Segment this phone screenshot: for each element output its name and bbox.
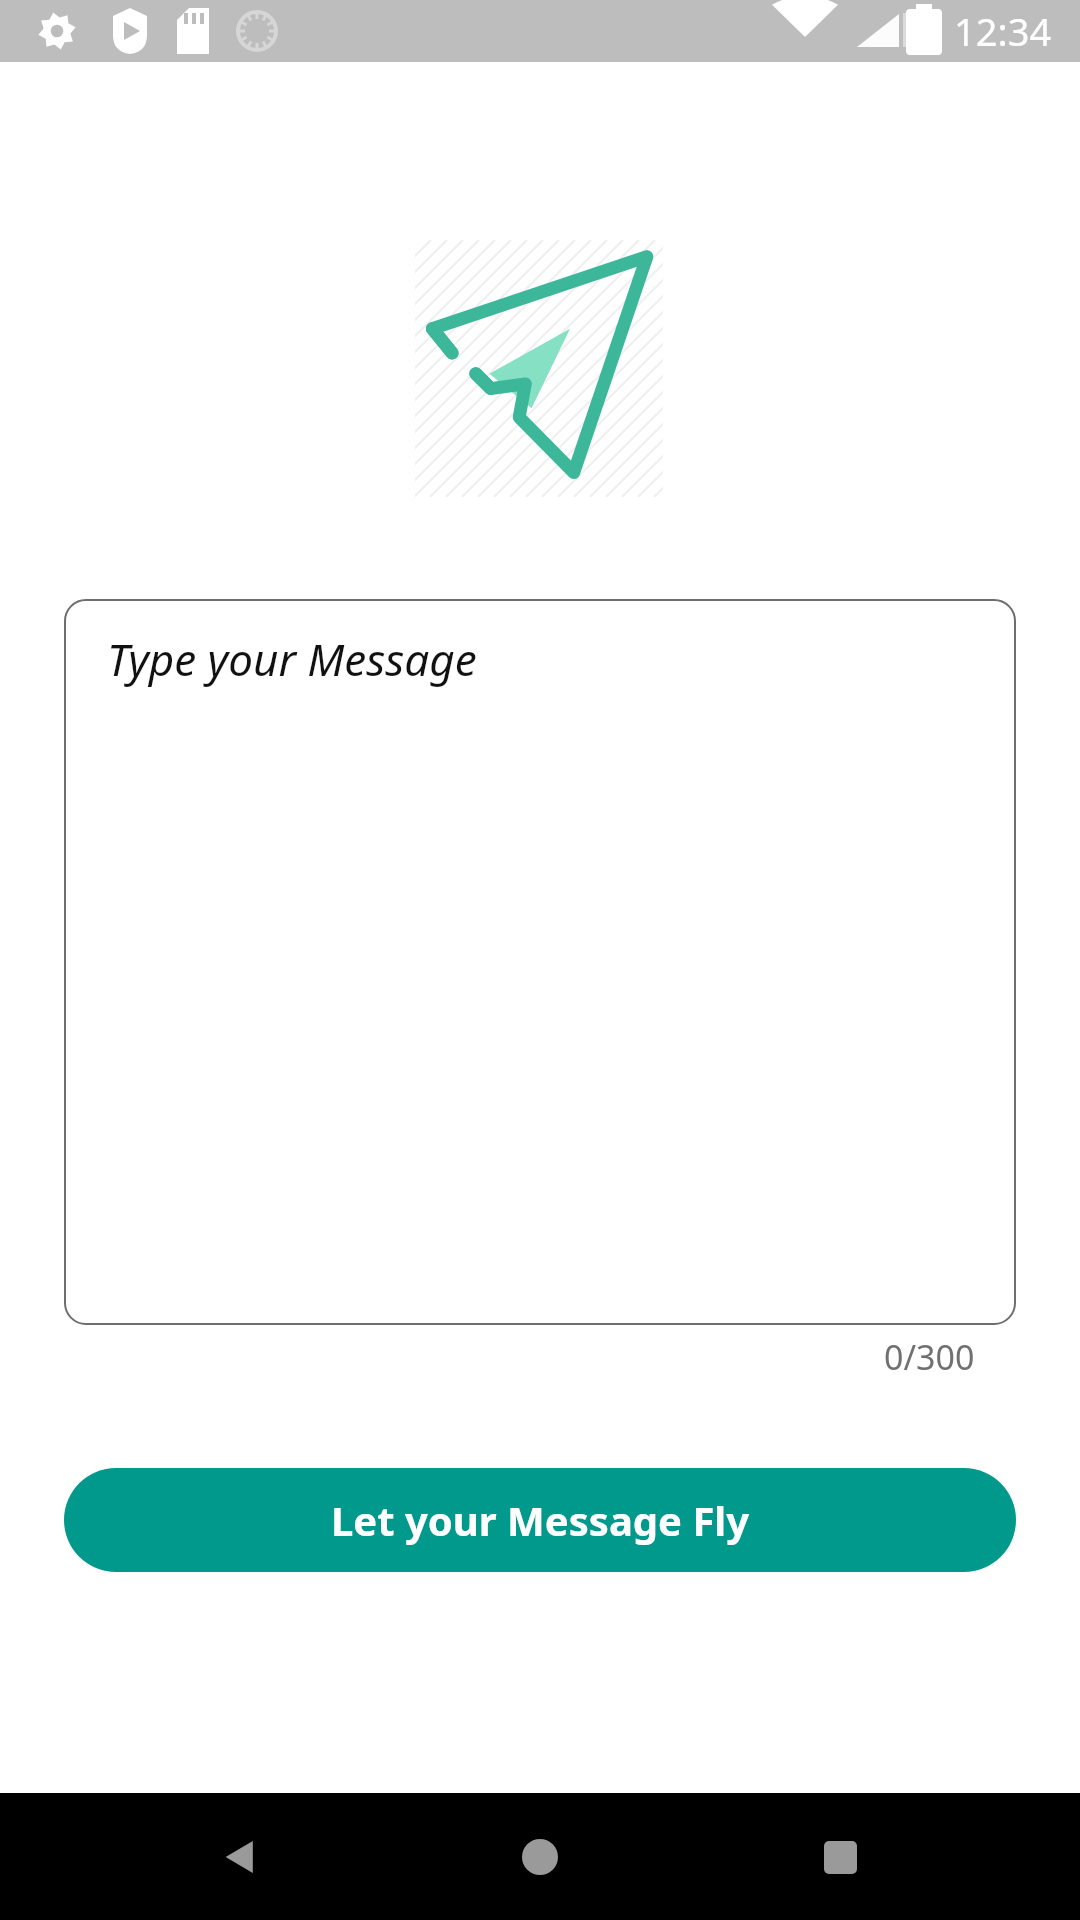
staticText: 0/300 <box>884 1334 975 1380</box>
button[interactable]: Back <box>180 1797 300 1917</box>
button[interactable]: Recent apps <box>780 1797 900 1917</box>
staticText: Let your Message Fly <box>331 1493 750 1547</box>
staticText: 12:34 <box>954 5 1052 57</box>
button[interactable]: Let your Message Fly <box>64 1468 1016 1572</box>
button[interactable]: Type your Message <box>64 599 1016 1325</box>
button[interactable]: Home <box>480 1797 600 1917</box>
staticText: Type your Message <box>107 629 477 689</box>
